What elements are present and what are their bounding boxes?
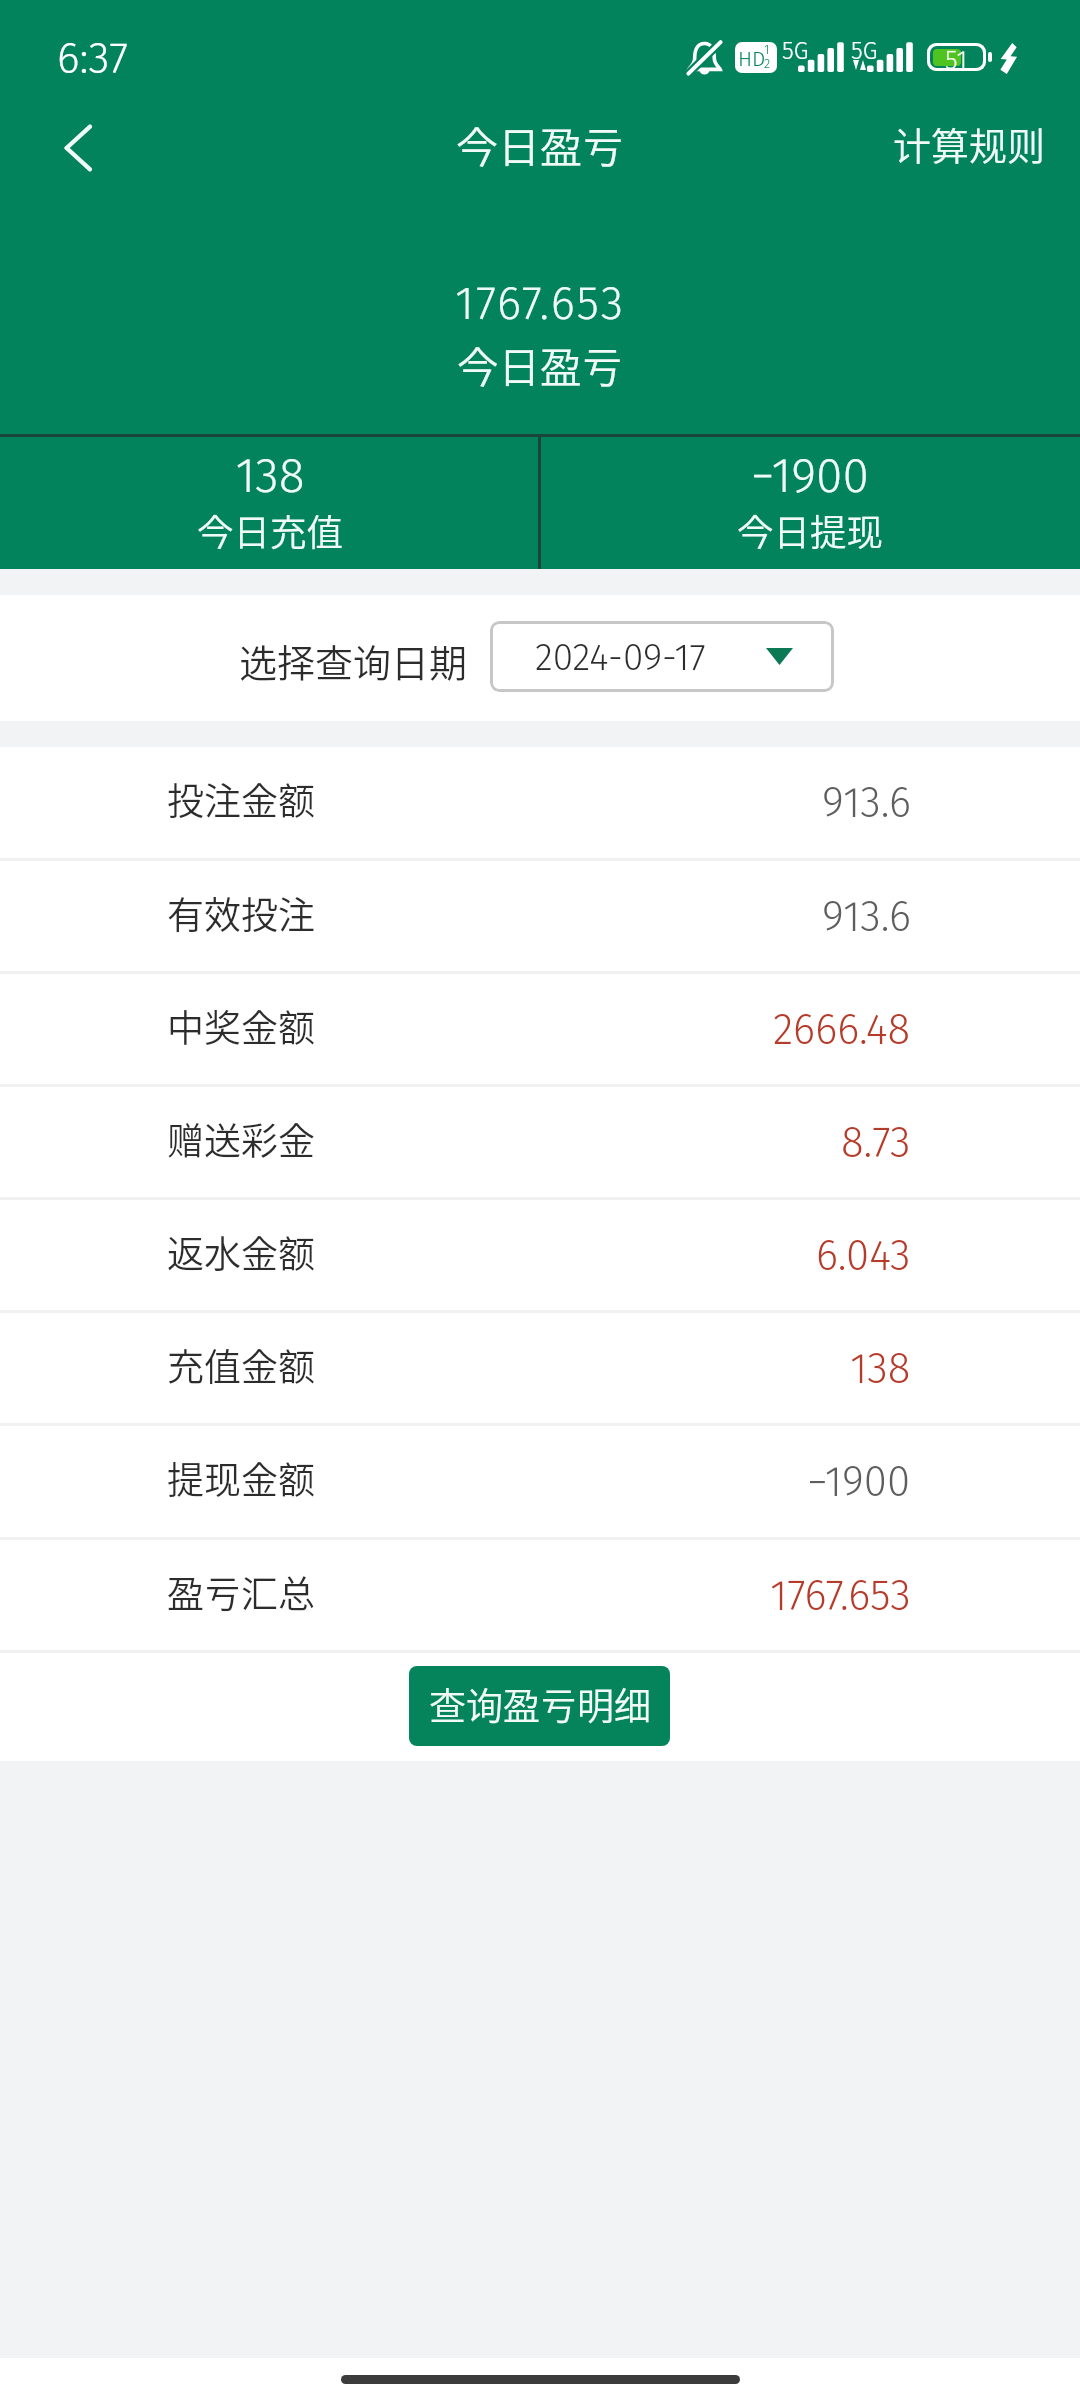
staticText: 2024-09-17 bbox=[535, 635, 706, 679]
staticText: 138 bbox=[0, 447, 540, 505]
button[interactable]: 计算规则 bbox=[879, 108, 1059, 178]
staticText: 8.73 bbox=[841, 1118, 911, 1168]
button[interactable]: 盈亏汇总 bbox=[0, 1540, 1080, 1653]
staticText: 1 bbox=[764, 42, 770, 58]
staticText: −1900 bbox=[807, 1457, 911, 1507]
staticText: 今日盈亏 bbox=[0, 114, 1080, 175]
staticText: 提现金额 bbox=[167, 1451, 315, 1505]
button[interactable]: 有效投注 bbox=[0, 861, 1080, 974]
staticText: 5G bbox=[851, 37, 878, 66]
staticText: 投注金额 bbox=[167, 772, 315, 826]
button[interactable]: 中奖金额 bbox=[0, 974, 1080, 1087]
staticText: 今日提现 bbox=[540, 504, 1080, 557]
staticText: 2666.48 bbox=[773, 1005, 911, 1055]
staticText: 赠送彩金 bbox=[167, 1112, 315, 1166]
button[interactable]: 138 bbox=[0, 437, 540, 569]
staticText: 今日盈亏 bbox=[0, 335, 1080, 395]
staticText: 6:37 bbox=[57, 33, 129, 85]
button[interactable]: Back bbox=[35, 112, 105, 182]
staticText: 5G bbox=[782, 37, 809, 66]
staticText: 1767.653 bbox=[0, 276, 1080, 331]
button[interactable]: 2024-09-17 bbox=[490, 621, 834, 692]
staticText: 计算规则 bbox=[893, 116, 1046, 171]
staticText: 充值金额 bbox=[167, 1338, 315, 1392]
staticText: 今日充值 bbox=[0, 504, 540, 557]
staticText: 返水金额 bbox=[167, 1225, 315, 1279]
staticText: 1767.653 bbox=[770, 1571, 911, 1621]
button[interactable]: 返水金额 bbox=[0, 1200, 1080, 1313]
staticText: 2 bbox=[764, 56, 771, 72]
staticText: 选择查询日期 bbox=[239, 633, 468, 688]
button[interactable]: 赠送彩金 bbox=[0, 1087, 1080, 1200]
staticText: 盈亏汇总 bbox=[167, 1565, 315, 1619]
staticText: HD bbox=[738, 46, 766, 71]
button[interactable]: 提现金额 bbox=[0, 1426, 1080, 1540]
button[interactable]: 充值金额 bbox=[0, 1313, 1080, 1426]
staticText: −1900 bbox=[540, 447, 1080, 505]
button[interactable]: 投注金额 bbox=[0, 747, 1080, 861]
staticText: 138 bbox=[850, 1344, 911, 1394]
staticText: 有效投注 bbox=[167, 886, 315, 940]
staticText: 中奖金额 bbox=[167, 999, 315, 1053]
staticText: 6.043 bbox=[816, 1231, 911, 1281]
staticText: 913.6 bbox=[822, 892, 911, 942]
staticText: 51 bbox=[945, 45, 968, 74]
button[interactable]: −1900 bbox=[540, 437, 1080, 569]
button[interactable]: 查询盈亏明细 bbox=[409, 1666, 670, 1746]
staticText: 913.6 bbox=[822, 778, 911, 828]
staticText: 查询盈亏明细 bbox=[429, 1677, 651, 1731]
